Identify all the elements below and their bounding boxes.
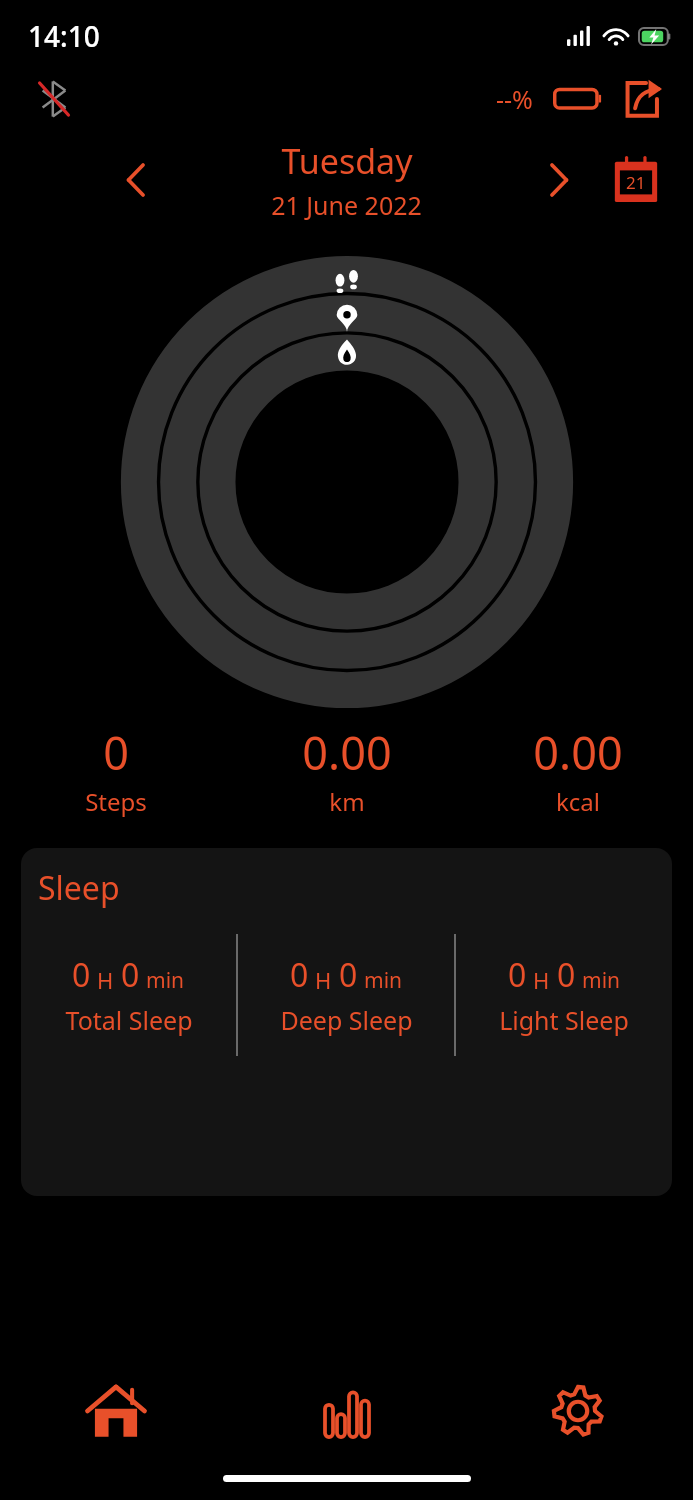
button[interactable]: 0.00 (231, 722, 462, 818)
staticText: 0 (290, 953, 309, 997)
staticText: Steps (85, 785, 147, 818)
button[interactable]: 0.00 (462, 722, 693, 818)
button[interactable]: Pick date (609, 153, 663, 207)
button[interactable]: Next day (533, 154, 585, 206)
staticText: 0 (72, 953, 91, 997)
button[interactable]: Previous day (110, 154, 162, 206)
staticText: 21 June 2022 (271, 188, 422, 222)
staticText: min (146, 966, 185, 995)
staticText: Sleep (38, 866, 120, 910)
staticText: 0.00 (533, 722, 623, 783)
staticText: Deep Sleep (280, 1003, 413, 1037)
staticText: 0 (121, 953, 140, 997)
staticText: Total Sleep (65, 1003, 193, 1037)
staticText: 14:10 (28, 17, 100, 55)
staticText: 21 (626, 171, 646, 194)
button[interactable]: Settings (462, 1365, 693, 1457)
button[interactable]: Bluetooth disconnected (30, 75, 78, 123)
staticText: 0 (557, 953, 576, 997)
staticText: 0 (103, 722, 129, 783)
staticText: --% (496, 82, 533, 116)
button[interactable]: Statistics (231, 1365, 462, 1457)
staticText: 0 (508, 953, 527, 997)
staticText: kcal (556, 785, 600, 818)
staticText: min (364, 966, 403, 995)
button[interactable]: Share (617, 75, 665, 123)
staticText: Tuesday (281, 138, 413, 184)
button[interactable]: Home (0, 1365, 231, 1457)
staticText: 0.00 (302, 722, 392, 783)
staticText: Light Sleep (499, 1003, 629, 1037)
staticText: km (329, 785, 365, 818)
staticText: H (97, 965, 114, 995)
button[interactable]: Sleep (21, 848, 672, 1196)
staticText: H (533, 965, 550, 995)
button[interactable]: 0 (0, 722, 231, 818)
staticText: H (315, 965, 332, 995)
staticText: 0 (339, 953, 358, 997)
staticText: min (582, 966, 621, 995)
